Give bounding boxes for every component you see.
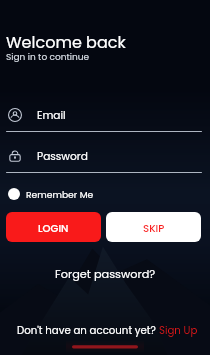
staticText: LOGIN — [38, 221, 69, 235]
staticText: Don't have an account yet? — [17, 323, 159, 337]
staticText: Welcome back — [6, 31, 126, 53]
button[interactable]: SKIP — [106, 212, 201, 242]
button[interactable]: LOGIN — [6, 212, 101, 242]
staticText: SKIP — [143, 221, 165, 235]
button[interactable]: Forget password? — [51, 264, 160, 284]
staticText: Email — [37, 108, 66, 123]
staticText: Remember Me — [26, 188, 94, 201]
staticText: Sign in to continue — [6, 51, 90, 64]
staticText: Password — [37, 149, 88, 164]
button[interactable]: Email — [0, 104, 210, 126]
button[interactable]: Remember Me — [8, 186, 94, 202]
button[interactable]: Sign Up — [159, 323, 198, 337]
button[interactable]: Password — [0, 145, 210, 167]
